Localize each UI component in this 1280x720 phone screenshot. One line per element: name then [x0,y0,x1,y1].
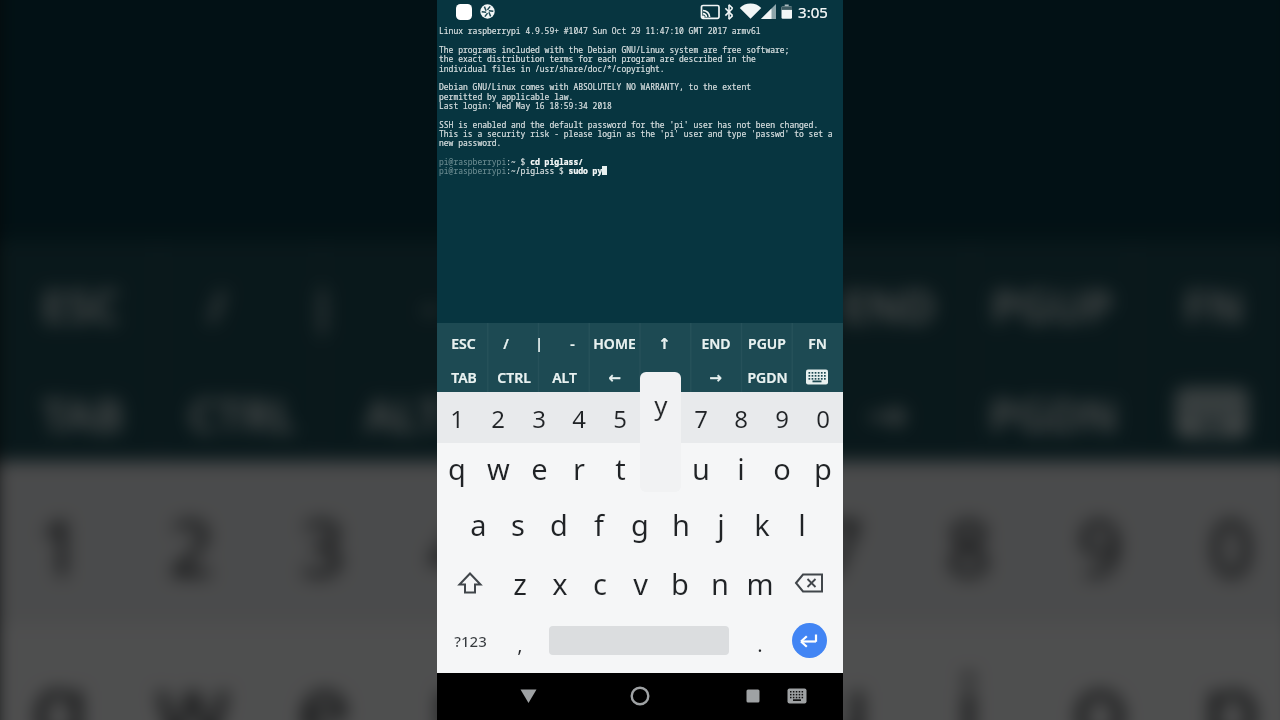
button[interactable]: y [646,608,774,720]
button[interactable]: w [127,608,255,720]
button[interactable]: END [656,313,776,373]
button[interactable]: PGDN [860,317,1244,509]
button[interactable]: 1 [437,388,477,448]
button[interactable]: c [580,553,620,613]
button[interactable]: 6 [640,388,680,448]
button[interactable]: | [130,208,514,400]
staticText: ← [608,369,621,386]
button[interactable]: t [518,608,646,720]
button[interactable]: x [540,553,580,613]
button[interactable]: | [479,313,599,373]
button[interactable]: HOME [370,208,754,400]
button[interactable] [792,623,827,658]
button[interactable]: q [437,438,477,498]
button[interactable] [520,688,537,704]
button[interactable]: 4 [386,448,514,640]
button[interactable]: - [512,313,632,373]
button[interactable] [746,689,760,703]
button[interactable]: 4 [559,388,599,448]
button[interactable]: 7 [777,448,905,640]
button[interactable]: g [620,494,660,554]
button[interactable]: j [701,494,741,554]
button[interactable]: 8 [721,388,761,448]
button[interactable]: p [803,438,843,498]
button[interactable]: r [386,608,514,720]
button[interactable]: r [559,438,599,498]
button[interactable]: k [742,494,782,554]
button[interactable]: e [258,608,386,720]
button[interactable]: ALT [210,317,594,509]
button[interactable]: u [777,608,905,720]
button[interactable]: FN [1020,208,1280,400]
button[interactable]: z [500,553,540,613]
button[interactable]: 3 [258,448,386,640]
button[interactable] [795,572,823,594]
button[interactable]: q [0,608,124,720]
button[interactable] [787,687,807,705]
button[interactable]: i [905,608,1033,720]
button[interactable]: ESC [0,208,271,400]
button[interactable]: 1 [0,448,124,640]
button[interactable]: PGDN [707,347,827,407]
button[interactable]: END [697,208,1081,400]
button[interactable]: ↑ [530,208,914,400]
button[interactable]: 9 [1036,448,1164,640]
button[interactable]: o [762,438,802,498]
button[interactable]: e [519,438,559,498]
button[interactable]: 0 [803,388,843,448]
button[interactable]: ESC [403,313,523,373]
button[interactable]: PGUP [707,313,827,373]
button[interactable] [1177,387,1247,438]
button[interactable]: v [620,553,660,613]
button[interactable]: / [446,313,566,373]
button[interactable] [631,687,649,705]
button[interactable]: , [460,614,580,674]
button[interactable]: 9 [762,388,802,448]
button[interactable]: 8 [905,448,1033,640]
button[interactable]: 5 [518,448,646,640]
button[interactable]: . [700,614,820,674]
button[interactable]: CTRL [454,347,574,407]
button[interactable]: t [600,438,640,498]
button[interactable]: CTRL [50,317,434,509]
button[interactable]: FN [757,313,877,373]
button[interactable]: w [478,438,518,498]
button[interactable] [457,570,483,596]
button[interactable]: 6 [646,448,774,640]
button[interactable]: PGUP [860,208,1244,400]
button[interactable]: 7 [681,388,721,448]
button[interactable]: 2 [127,448,255,640]
button[interactable]: 0 [1167,448,1280,640]
button[interactable]: TAB [0,317,274,509]
button[interactable]: → [694,317,1078,509]
button[interactable]: b [660,553,700,613]
button[interactable]: / [25,208,409,400]
button[interactable]: u [681,438,721,498]
button[interactable]: ← [370,317,754,509]
button[interactable]: l [782,494,822,554]
button[interactable]: i [721,438,761,498]
button[interactable]: ← [554,347,674,407]
button[interactable]: - [236,208,620,400]
button[interactable]: d [539,494,579,554]
button[interactable]: o [1036,608,1164,720]
button[interactable]: 3 [519,388,559,448]
button[interactable]: ?123 [410,611,530,671]
button[interactable]: → [655,347,775,407]
button[interactable]: f [579,494,619,554]
button[interactable]: p [1167,608,1280,720]
button[interactable]: HOME [554,313,674,373]
button[interactable]: ALT [504,347,624,407]
button[interactable]: 5 [600,388,640,448]
button[interactable]: m [740,553,780,613]
button[interactable]: h [661,494,701,554]
button[interactable]: s [498,494,538,554]
button[interactable]: TAB [404,347,524,407]
button[interactable]: ↑ [604,313,724,373]
button[interactable]: a [458,494,498,554]
button[interactable] [806,369,828,385]
button[interactable]: n [700,553,740,613]
button[interactable]: 2 [478,388,518,448]
